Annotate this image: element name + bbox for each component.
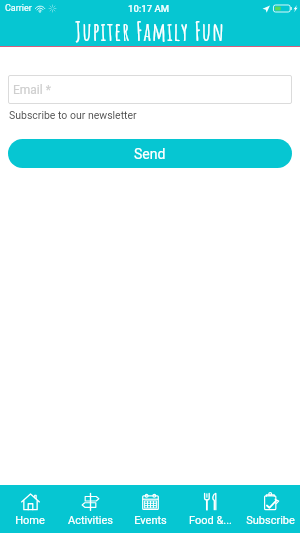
staticText: Email *: [13, 83, 51, 97]
staticText: 10:17 AM: [128, 3, 170, 14]
button[interactable]: Food &...: [180, 485, 240, 533]
staticText: Carrier: [5, 3, 32, 14]
staticText: Subscribe: [246, 514, 295, 527]
staticText: Events: [134, 514, 167, 527]
staticText: Jupiter Family Fun: [75, 16, 225, 48]
staticText: Subscribe to our newsletter: [9, 109, 137, 121]
staticText: Send: [134, 146, 166, 162]
staticText: Activities: [68, 514, 113, 527]
button[interactable]: Subscribe: [240, 485, 300, 533]
button[interactable]: Email address input: [8, 75, 292, 104]
staticText: Home: [15, 514, 45, 527]
staticText: Food &...: [189, 514, 232, 527]
button[interactable]: Events: [120, 485, 180, 533]
button[interactable]: Home: [0, 485, 60, 533]
button[interactable]: Send: [8, 139, 292, 168]
button[interactable]: Activities: [60, 485, 120, 533]
